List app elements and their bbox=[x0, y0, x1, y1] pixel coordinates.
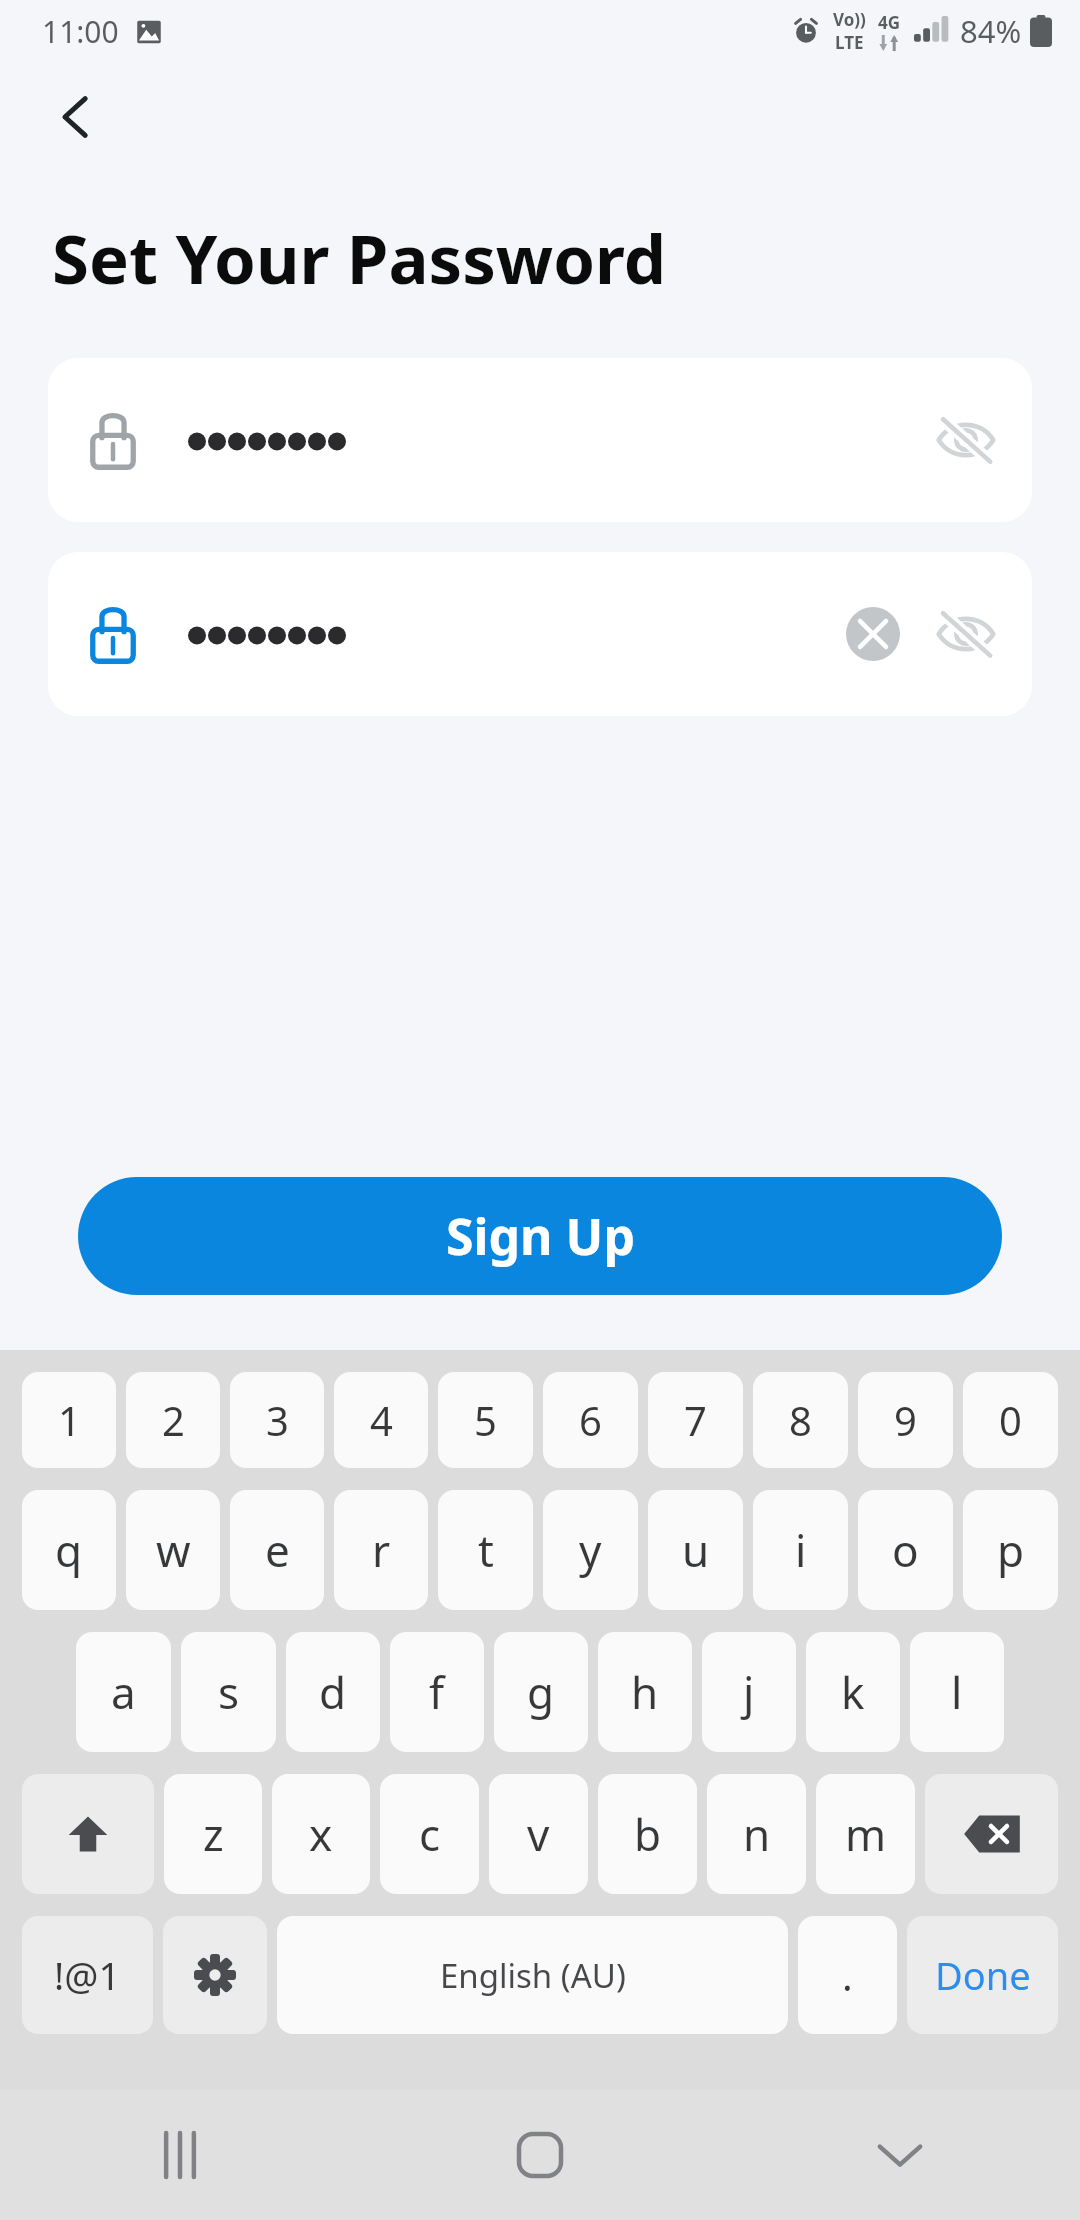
button[interactable]: 5 bbox=[438, 1372, 533, 1468]
button[interactable]: e bbox=[230, 1490, 324, 1610]
staticText: g bbox=[527, 1662, 555, 1722]
staticText: w bbox=[156, 1520, 191, 1580]
button[interactable]: d bbox=[286, 1632, 380, 1752]
staticText: c bbox=[419, 1804, 441, 1864]
button[interactable]: q bbox=[22, 1490, 116, 1610]
button[interactable]: Keyboard settings bbox=[163, 1916, 267, 2034]
button[interactable]: !@1 bbox=[22, 1916, 153, 2034]
button[interactable]: s bbox=[181, 1632, 276, 1752]
staticText: d bbox=[319, 1662, 347, 1722]
button[interactable]: v bbox=[489, 1774, 588, 1894]
staticText: LTE bbox=[835, 31, 864, 54]
staticText: !@1 bbox=[54, 1949, 121, 2001]
button[interactable]: . bbox=[798, 1916, 897, 2034]
button[interactable]: English (AU) bbox=[277, 1916, 788, 2034]
staticText: 7 bbox=[684, 1393, 707, 1447]
button[interactable]: Hide keyboard bbox=[720, 2090, 1080, 2220]
button[interactable]: c bbox=[380, 1774, 479, 1894]
staticText: k bbox=[841, 1662, 865, 1722]
staticText: r bbox=[372, 1520, 391, 1580]
staticText: . bbox=[842, 1948, 853, 2002]
button[interactable]: 3 bbox=[230, 1372, 324, 1468]
button[interactable]: m bbox=[816, 1774, 915, 1894]
button[interactable]: g bbox=[494, 1632, 588, 1752]
staticText: 4 bbox=[370, 1393, 393, 1447]
button[interactable]: j bbox=[702, 1632, 796, 1752]
button[interactable]: Back bbox=[30, 71, 122, 163]
staticText: Set Your Password bbox=[52, 212, 666, 303]
staticText: f bbox=[429, 1662, 445, 1722]
button[interactable]: Done bbox=[907, 1916, 1058, 2034]
staticText: 1 bbox=[58, 1393, 81, 1447]
button[interactable]: u bbox=[648, 1490, 743, 1610]
staticText: z bbox=[203, 1804, 224, 1864]
staticText: 0 bbox=[999, 1393, 1022, 1447]
button[interactable]: r bbox=[334, 1490, 428, 1610]
button[interactable]: Backspace bbox=[925, 1774, 1058, 1894]
button[interactable]: Sign Up bbox=[78, 1177, 1002, 1295]
staticText: v bbox=[527, 1804, 550, 1864]
staticText: a bbox=[111, 1662, 136, 1722]
button[interactable]: Clear text bbox=[48, 552, 1032, 716]
staticText: i bbox=[795, 1520, 807, 1580]
staticText: q bbox=[55, 1520, 83, 1580]
button[interactable]: Clear text bbox=[838, 599, 908, 669]
button[interactable]: k bbox=[806, 1632, 900, 1752]
button[interactable]: w bbox=[126, 1490, 220, 1610]
staticText: x bbox=[309, 1804, 333, 1864]
staticText: y bbox=[579, 1520, 602, 1580]
button[interactable]: p bbox=[963, 1490, 1058, 1610]
button[interactable]: Show password bbox=[926, 594, 1006, 674]
button[interactable]: 7 bbox=[648, 1372, 743, 1468]
button[interactable]: 2 bbox=[126, 1372, 220, 1468]
staticText: 9 bbox=[894, 1393, 917, 1447]
button[interactable]: 0 bbox=[963, 1372, 1058, 1468]
button[interactable]: n bbox=[707, 1774, 806, 1894]
button[interactable]: x bbox=[272, 1774, 370, 1894]
button[interactable]: Show password bbox=[926, 400, 1006, 480]
button[interactable]: b bbox=[598, 1774, 697, 1894]
button[interactable]: a bbox=[76, 1632, 171, 1752]
button[interactable]: t bbox=[438, 1490, 533, 1610]
staticText: b bbox=[634, 1804, 662, 1864]
button[interactable]: z bbox=[164, 1774, 262, 1894]
staticText: Sign Up bbox=[446, 1202, 635, 1270]
staticText: j bbox=[743, 1662, 755, 1722]
button[interactable]: Recent apps bbox=[0, 2090, 360, 2220]
staticText: l bbox=[951, 1662, 963, 1722]
button[interactable]: f bbox=[390, 1632, 484, 1752]
button[interactable]: 4 bbox=[334, 1372, 428, 1468]
staticText: s bbox=[218, 1662, 240, 1722]
button[interactable]: l bbox=[910, 1632, 1004, 1752]
button[interactable]: o bbox=[858, 1490, 953, 1610]
button[interactable]: Home bbox=[360, 2090, 720, 2220]
button[interactable]: Shift bbox=[22, 1774, 154, 1894]
staticText: 8 bbox=[789, 1393, 812, 1447]
button[interactable]: 6 bbox=[543, 1372, 638, 1468]
staticText: p bbox=[997, 1520, 1025, 1580]
staticText: Vo)) bbox=[833, 8, 866, 31]
staticText: n bbox=[743, 1804, 771, 1864]
staticText: 11:00 bbox=[42, 11, 119, 52]
staticText: Done bbox=[935, 1949, 1031, 2001]
staticText: o bbox=[892, 1520, 919, 1580]
staticText: m bbox=[845, 1804, 887, 1864]
button[interactable]: 8 bbox=[753, 1372, 848, 1468]
staticText: 84% bbox=[960, 10, 1022, 52]
staticText: u bbox=[682, 1520, 710, 1580]
staticText: e bbox=[265, 1520, 290, 1580]
staticText: 3 bbox=[266, 1393, 289, 1447]
button[interactable]: i bbox=[753, 1490, 848, 1610]
button[interactable]: 1 bbox=[22, 1372, 116, 1468]
button[interactable]: h bbox=[598, 1632, 692, 1752]
button[interactable]: Show password bbox=[48, 358, 1032, 522]
staticText: 5 bbox=[474, 1393, 497, 1447]
staticText: 4G bbox=[878, 11, 901, 34]
staticText: English (AU) bbox=[440, 1953, 626, 1998]
staticText: h bbox=[631, 1662, 659, 1722]
button[interactable]: y bbox=[543, 1490, 638, 1610]
staticText: 2 bbox=[162, 1393, 185, 1447]
staticText: t bbox=[478, 1520, 494, 1580]
button[interactable]: 9 bbox=[858, 1372, 953, 1468]
staticText: 6 bbox=[579, 1393, 602, 1447]
